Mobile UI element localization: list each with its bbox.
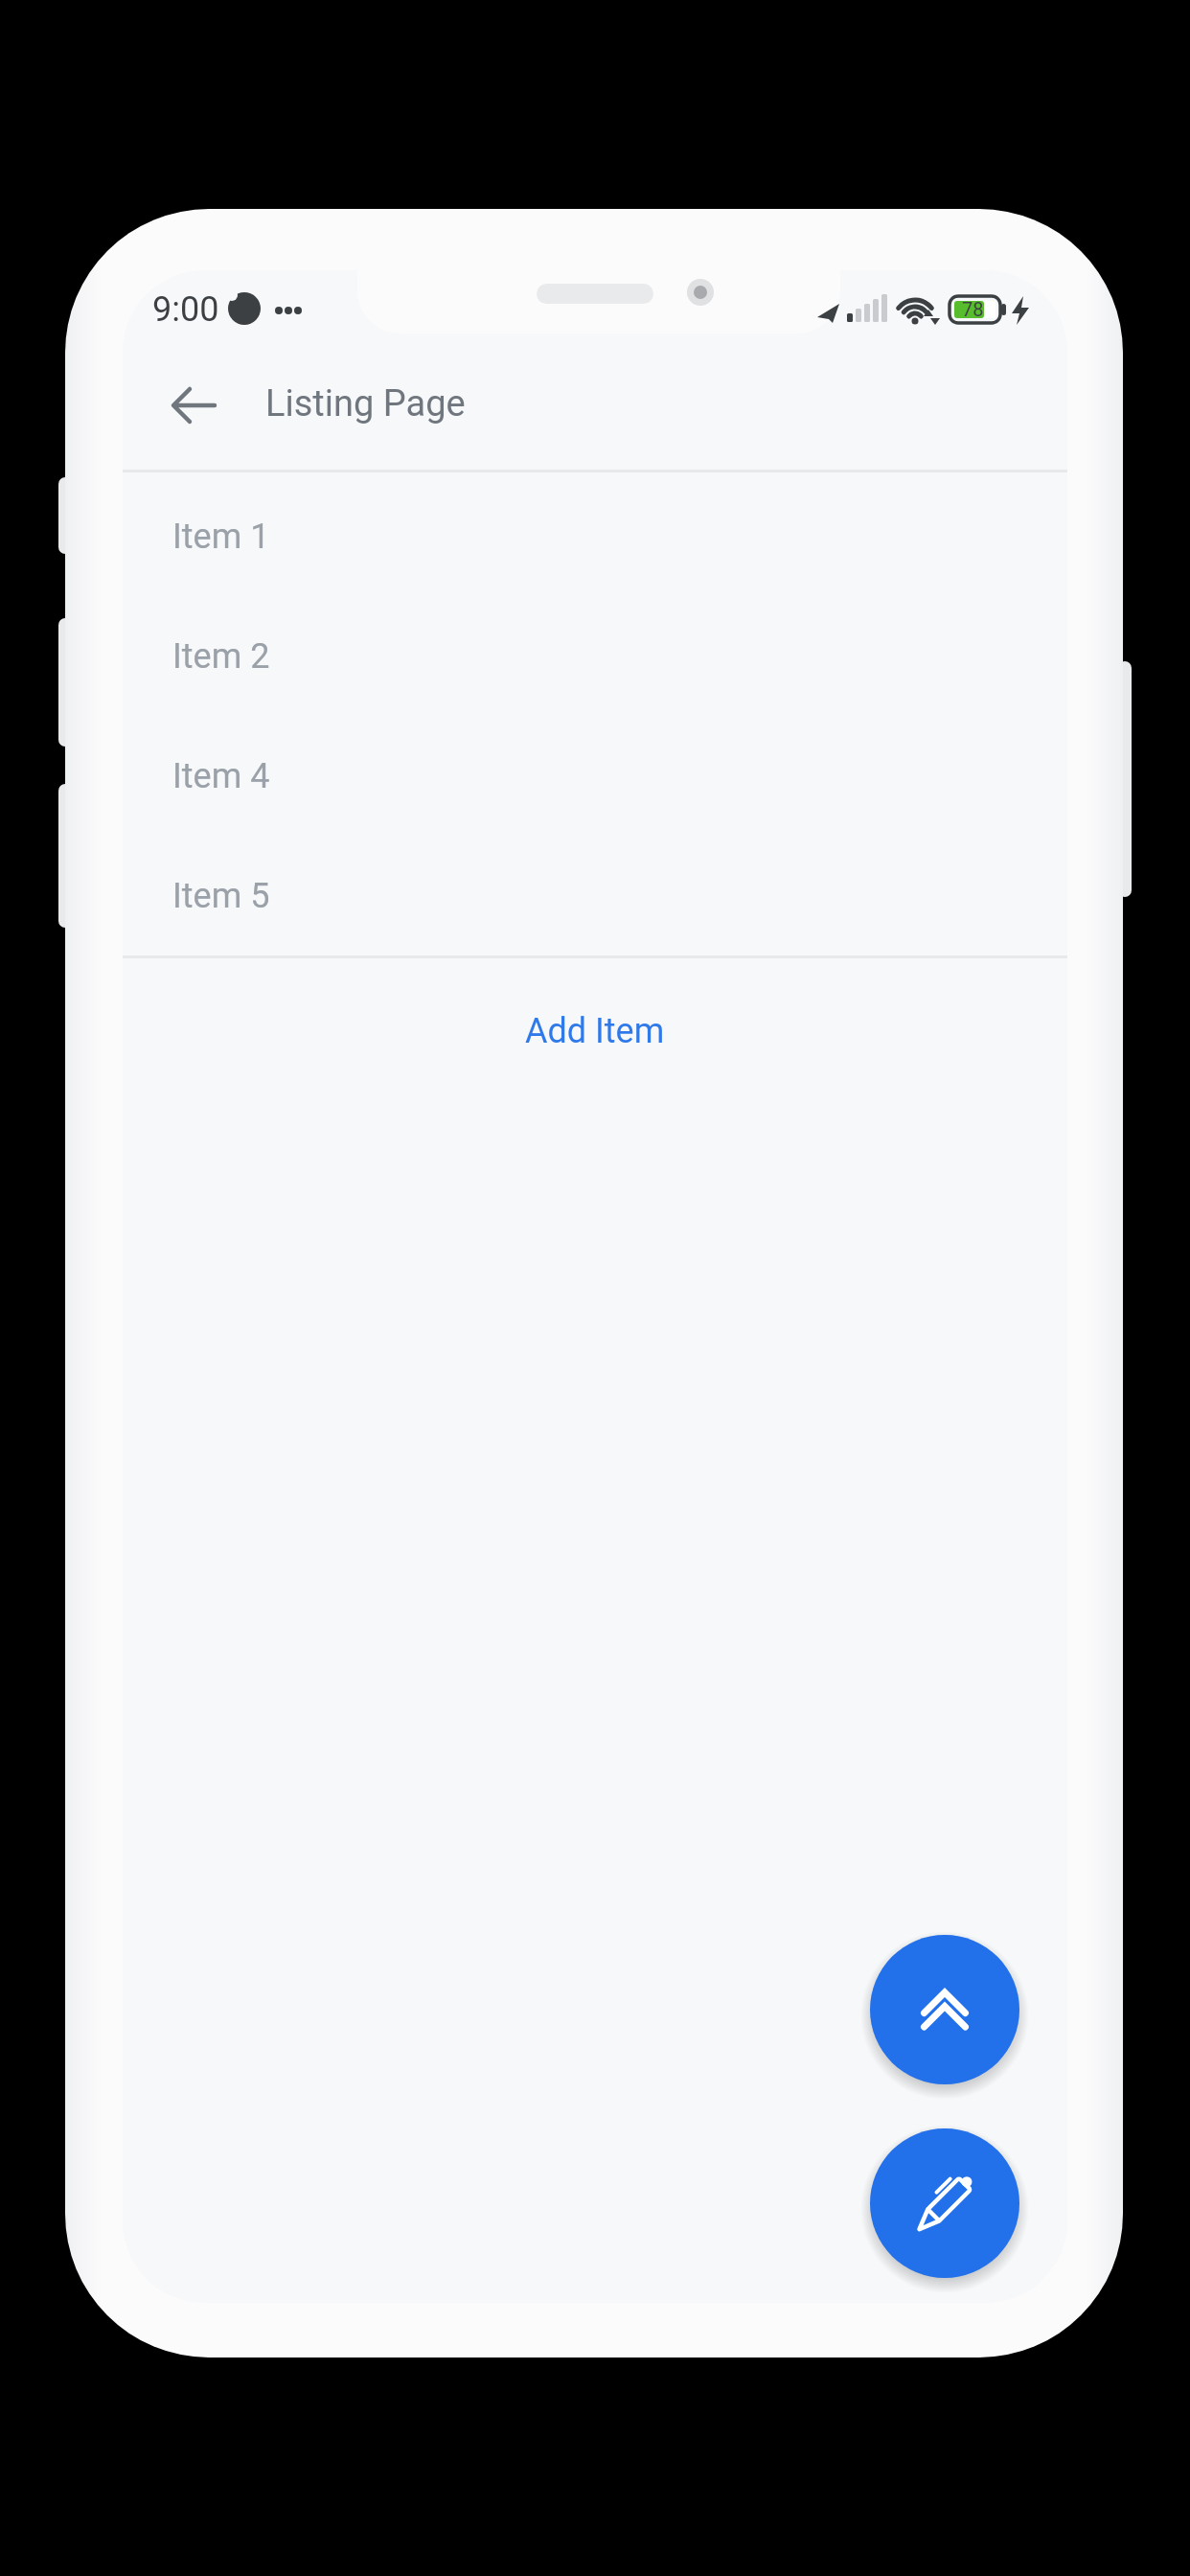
button[interactable]	[870, 2128, 1019, 2278]
staticText: Item 2	[172, 636, 270, 677]
button[interactable]: Item 2	[123, 596, 1067, 716]
staticText: Item 4	[172, 756, 270, 796]
button[interactable]: Item 4	[123, 716, 1067, 836]
button[interactable]	[870, 1935, 1019, 2084]
staticText: 78	[962, 298, 984, 320]
staticText: Item 1	[172, 517, 270, 557]
button[interactable]: Add Item	[123, 958, 1067, 1104]
staticText: Add Item	[525, 1011, 665, 1051]
button[interactable]: Item 5	[123, 836, 1067, 955]
staticText: 9:00	[152, 289, 219, 330]
button[interactable]: Item 1	[123, 476, 1067, 596]
staticText: Item 5	[172, 876, 270, 916]
staticText: Listing Page	[265, 382, 466, 425]
